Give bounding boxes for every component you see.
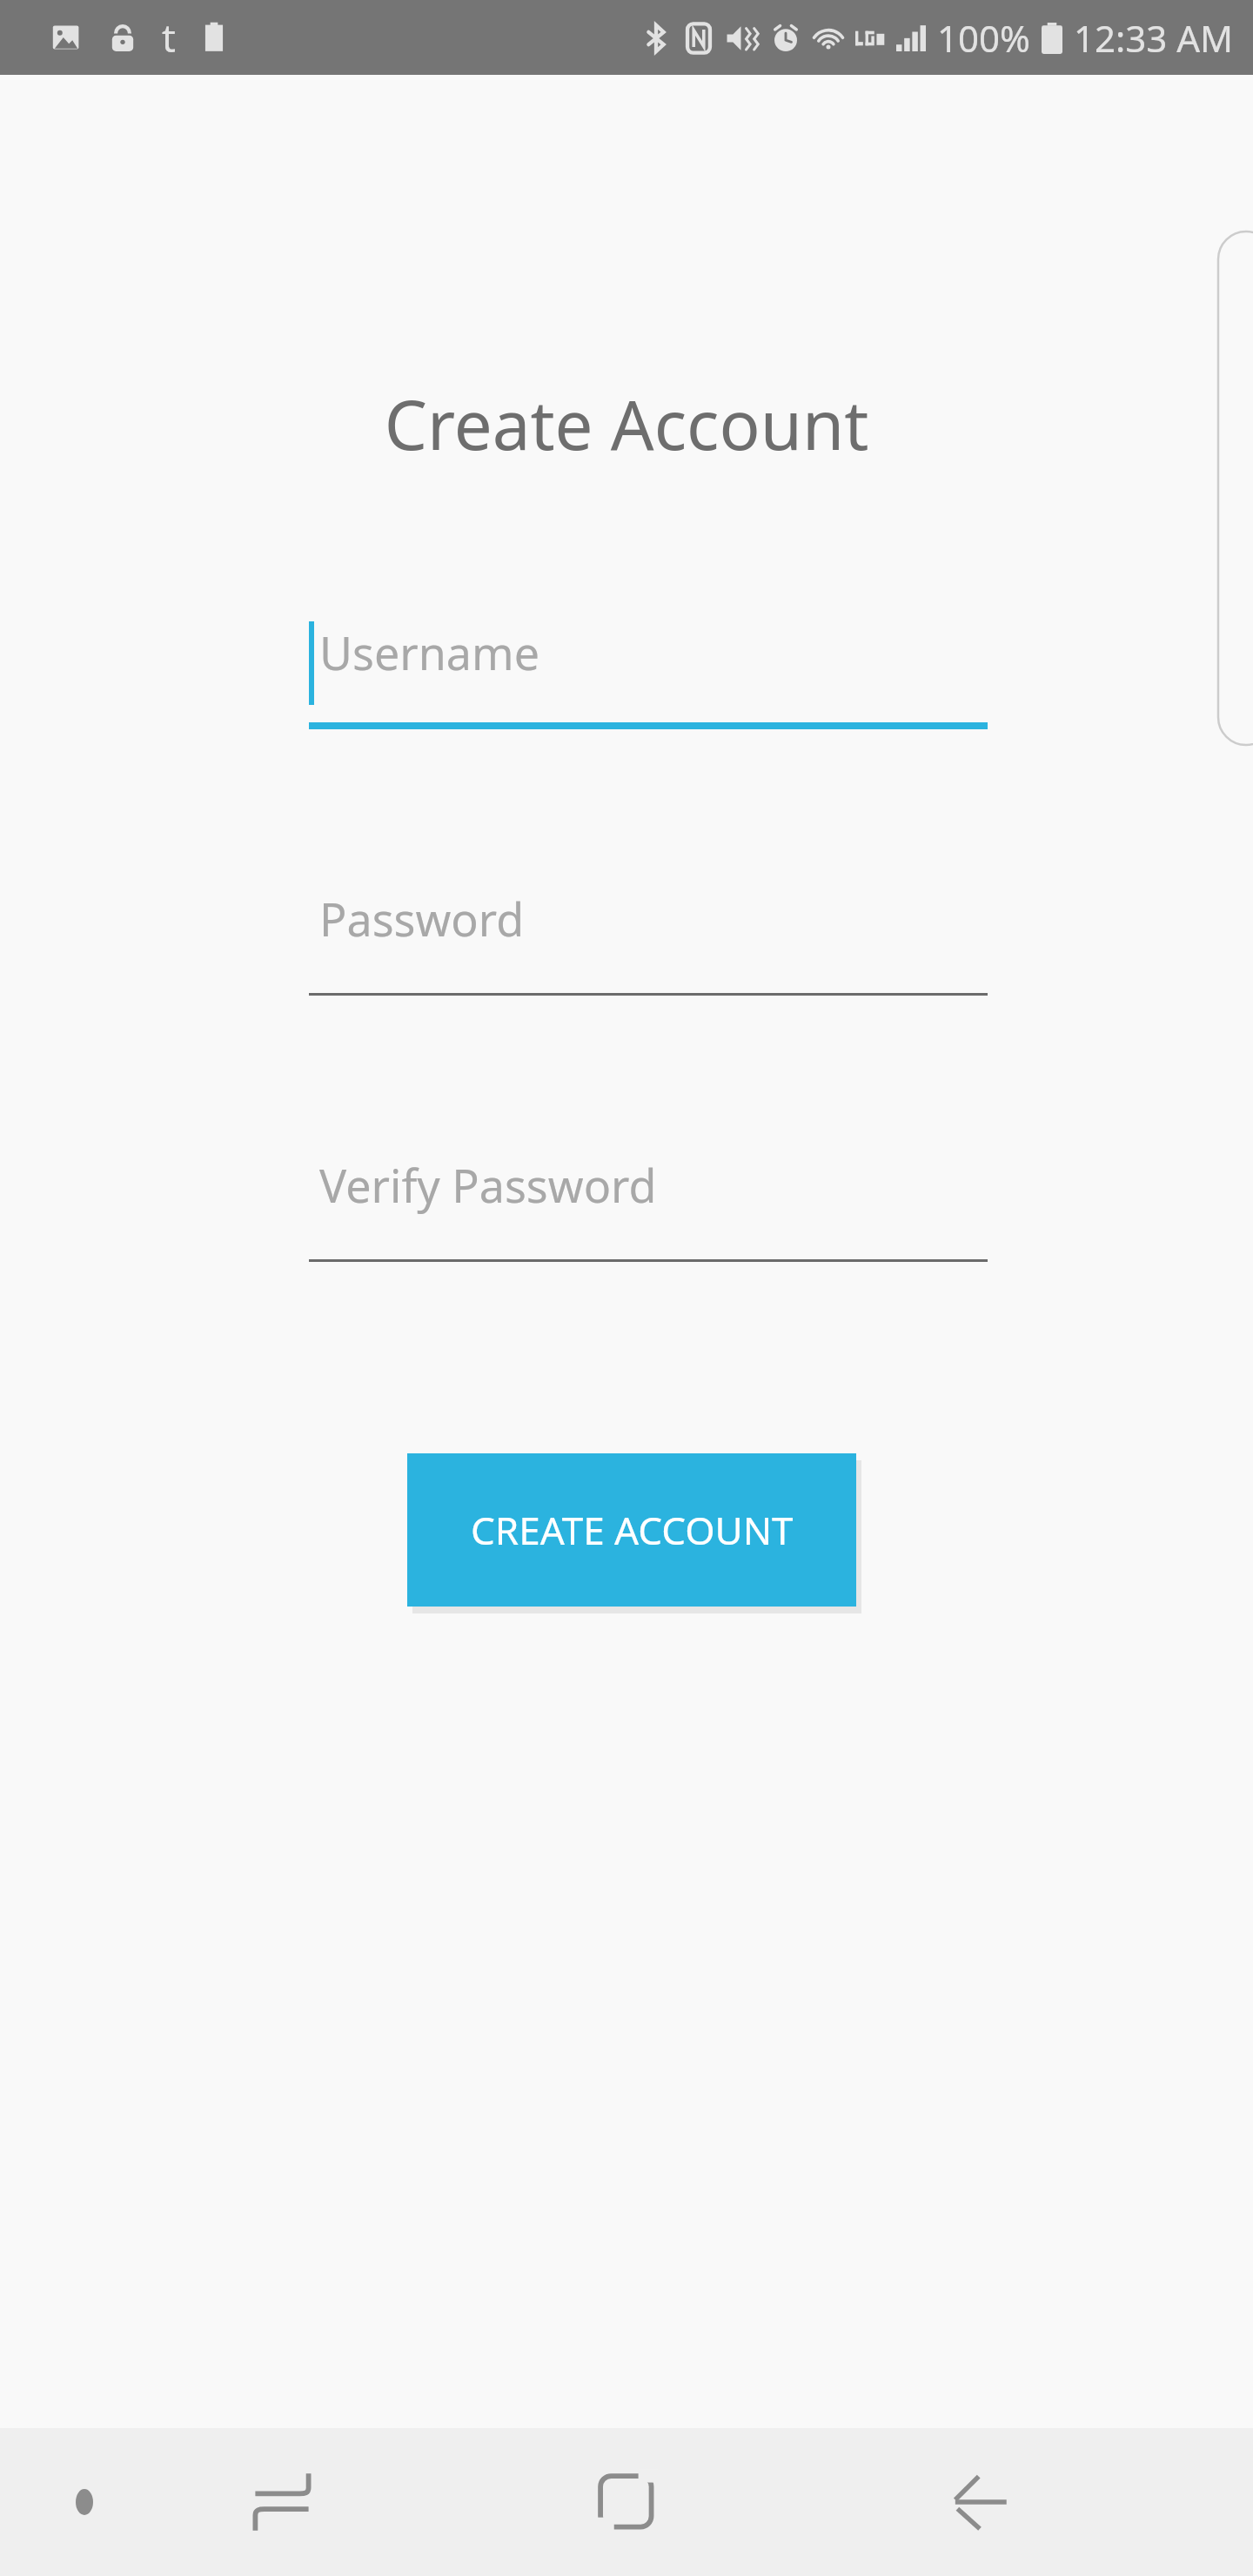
staticText: Create Account [0,378,1253,470]
button[interactable]: CREATE ACCOUNT [407,1453,861,1619]
button[interactable]: Home [570,2445,683,2559]
staticText: Verify Password [319,1154,657,1216]
button[interactable]: Username [309,616,988,729]
staticText: Password [319,888,525,949]
button[interactable]: Password [309,882,988,996]
staticText: 12:33 AM [1074,13,1234,63]
button[interactable]: Back [928,2450,1032,2554]
staticText: CREATE ACCOUNT [471,1504,794,1556]
staticText: 100% [937,13,1030,63]
staticText: t [162,11,176,64]
button[interactable]: Recent apps [230,2450,334,2554]
staticText: Username [319,621,539,683]
button[interactable]: Verify Password [309,1149,988,1262]
button[interactable]: Show menu [54,2472,115,2532]
